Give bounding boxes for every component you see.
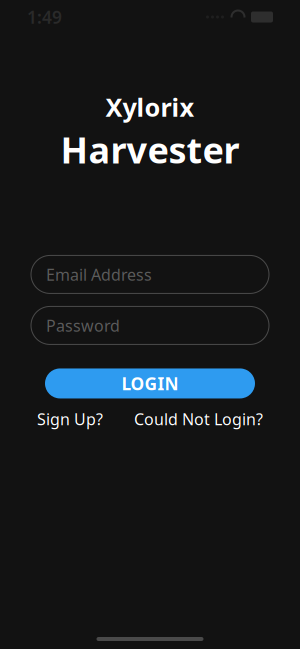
staticText: Could Not Login? [134, 408, 263, 430]
staticText: Xylorix [105, 90, 194, 124]
button[interactable]: LOGIN [45, 368, 255, 398]
staticText: Harvester [60, 126, 239, 173]
staticText: Email Address [46, 264, 152, 285]
staticText: Password [46, 315, 120, 336]
staticText: 1:49 [27, 5, 62, 28]
staticText: LOGIN [121, 372, 178, 395]
button[interactable]: Sign Up? [37, 408, 103, 430]
button[interactable]: Could Not Login? [134, 408, 263, 430]
staticText: Sign Up? [37, 408, 103, 430]
